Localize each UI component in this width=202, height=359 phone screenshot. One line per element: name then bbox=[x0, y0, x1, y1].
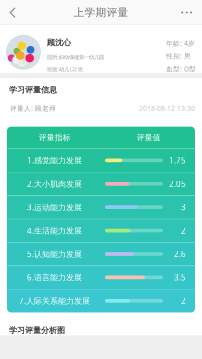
staticText: 2.05 bbox=[169, 178, 186, 189]
staticText: 2.大小肌肉发展 bbox=[27, 178, 82, 189]
staticText: 5.认知能力发展 bbox=[27, 249, 82, 259]
staticText: 评量值 bbox=[136, 133, 160, 143]
staticText: 4.生活能力发展 bbox=[27, 225, 82, 236]
staticText: 学习评量信息 bbox=[9, 85, 57, 95]
staticText: 3 bbox=[181, 202, 186, 212]
staticText: 3.运动能力发展 bbox=[27, 202, 82, 212]
staticText: 年龄: 4岁 bbox=[166, 39, 195, 48]
staticText: 6.语言能力发展 bbox=[27, 272, 82, 283]
button[interactable]: 返回 bbox=[0, 0, 26, 25]
staticText: 1.感觉能力发展 bbox=[27, 155, 82, 166]
staticText: 班级: 幼儿 (2) 班 bbox=[47, 66, 83, 73]
button[interactable]: 更多 bbox=[169, 2, 202, 23]
staticText: 评量人: 顾老师 bbox=[10, 104, 56, 113]
staticText: 血型: O型 bbox=[166, 64, 196, 73]
staticText: 2 bbox=[181, 225, 186, 236]
staticText: 上学期评量 bbox=[73, 6, 128, 19]
staticText: 性别: 男 bbox=[166, 52, 191, 60]
staticText: 7.人际关系能力发展 bbox=[19, 295, 90, 306]
staticText: 2.6 bbox=[174, 249, 186, 259]
staticText: 评量指标 bbox=[38, 133, 70, 143]
staticText: 3.5 bbox=[174, 272, 186, 283]
staticText: 学习评量分析图 bbox=[9, 325, 65, 335]
staticText: 2 bbox=[181, 295, 186, 306]
staticText: 2018-08-12 13:30 bbox=[139, 104, 195, 113]
staticText: 1.75 bbox=[169, 155, 186, 166]
staticText: 顾沈心 bbox=[47, 38, 71, 47]
staticText: 园所: 妇幼保健第一幼儿园 bbox=[47, 53, 104, 61]
